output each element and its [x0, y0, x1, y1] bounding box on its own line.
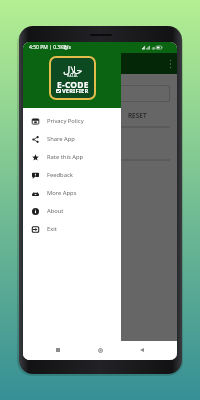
button[interactable]: More Apps	[23, 184, 121, 202]
staticText: Share App	[47, 135, 75, 143]
staticText: Feedback	[47, 171, 73, 179]
button[interactable]: More options	[163, 57, 177, 71]
staticText: Rate this App	[47, 153, 84, 161]
staticText: 4:50 PM | 0.3KB/s	[29, 44, 71, 51]
staticText: More Apps	[47, 189, 77, 197]
button[interactable]: Share App	[23, 130, 121, 148]
button[interactable]: Feedback	[23, 166, 121, 184]
button[interactable]: RESET	[128, 111, 147, 120]
staticText: E471	[30, 135, 48, 145]
staticText: HALAL	[67, 74, 79, 78]
button[interactable]: Privacy Policy	[23, 112, 121, 130]
staticText: E-CODE	[57, 79, 89, 91]
button[interactable]: Back	[135, 343, 149, 357]
staticText: Mono and Diglycerides of Fatty Acids (Em…	[30, 190, 109, 208]
staticText: حلال	[63, 65, 83, 77]
staticText: Exit	[47, 225, 57, 233]
staticText: Privacy Policy	[47, 117, 84, 125]
button[interactable]: SEARCH	[30, 111, 55, 120]
staticText: VERIFIER	[62, 87, 89, 95]
button[interactable]: Recents	[51, 343, 65, 357]
staticText: E-Code Verifier	[33, 58, 89, 69]
button[interactable]: Rate this App	[23, 148, 121, 166]
button[interactable]: Exit	[23, 220, 121, 238]
staticText: About	[47, 207, 64, 215]
button[interactable]: About	[23, 202, 121, 220]
button[interactable]: Home	[93, 343, 107, 357]
staticText: An emulsifier that may be made from anim…	[30, 223, 121, 247]
